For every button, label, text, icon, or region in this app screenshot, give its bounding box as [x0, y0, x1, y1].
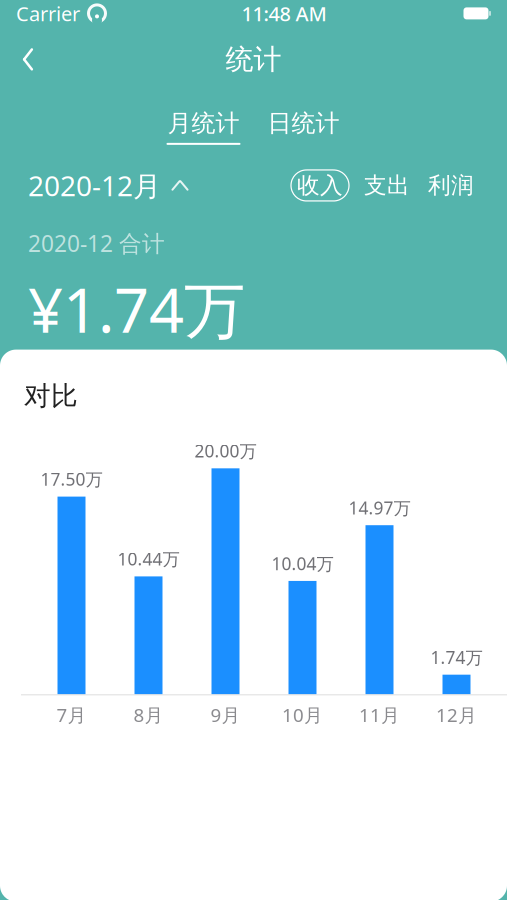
staticText: 10.04万 — [271, 552, 333, 575]
button[interactable]: 收入 — [291, 170, 349, 201]
staticText: 17.50万 — [40, 468, 102, 491]
staticText: 10.44万 — [117, 547, 179, 570]
staticText: 2020-12 合计 — [28, 228, 165, 258]
button[interactable]: 月统计 — [166, 108, 240, 145]
staticText: 月统计 — [167, 108, 239, 138]
staticText: 统计 — [225, 42, 281, 77]
staticText: 8月 — [133, 702, 163, 727]
staticText: 利润 — [428, 171, 474, 199]
button[interactable]: 日统计 — [266, 108, 340, 145]
staticText: 9月 — [210, 702, 240, 727]
staticText: Carrier — [16, 0, 80, 27]
button[interactable]: 利润 — [423, 170, 479, 201]
staticText: ¥1.74万 — [28, 268, 245, 350]
staticText: 11:48 AM — [241, 0, 326, 27]
button[interactable]: Back — [6, 37, 50, 81]
staticText: 2020-12月 — [28, 167, 161, 204]
button[interactable]: 2020-12月 — [28, 167, 190, 204]
staticText: 14.97万 — [348, 496, 410, 519]
staticText: 对比 — [24, 380, 78, 412]
staticText: 收入 — [297, 171, 343, 199]
staticText: 日统计 — [267, 108, 339, 138]
staticText: 1.74万 — [430, 646, 482, 669]
staticText: 10月 — [282, 702, 323, 727]
staticText: 11月 — [359, 702, 400, 727]
staticText: 20.00万 — [194, 439, 256, 462]
staticText: 支出 — [364, 171, 410, 199]
staticText: 12月 — [436, 702, 477, 727]
button[interactable]: 支出 — [359, 170, 415, 201]
staticText: 7月 — [56, 702, 86, 727]
